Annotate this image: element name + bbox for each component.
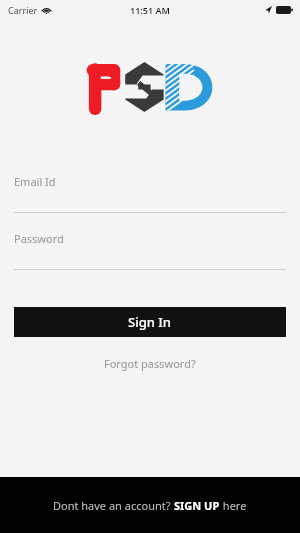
staticText: Carrier bbox=[8, 4, 38, 16]
staticText: here bbox=[220, 498, 247, 513]
staticText: Email Id bbox=[14, 174, 56, 189]
staticText: Sign In bbox=[128, 313, 172, 331]
staticText: Password bbox=[14, 231, 64, 246]
staticText: Forgot password? bbox=[104, 356, 196, 371]
button[interactable]: Dont have an account? bbox=[0, 477, 300, 533]
staticText: SIGN UP bbox=[174, 498, 220, 513]
button[interactable]: Sign In bbox=[14, 307, 286, 337]
button[interactable]: Forgot password? bbox=[94, 352, 206, 375]
staticText: Dont have an account? bbox=[53, 498, 174, 513]
button[interactable]: Email Id bbox=[0, 174, 300, 213]
button[interactable]: Password bbox=[0, 231, 300, 270]
staticText: 11:51 AM bbox=[130, 4, 170, 16]
